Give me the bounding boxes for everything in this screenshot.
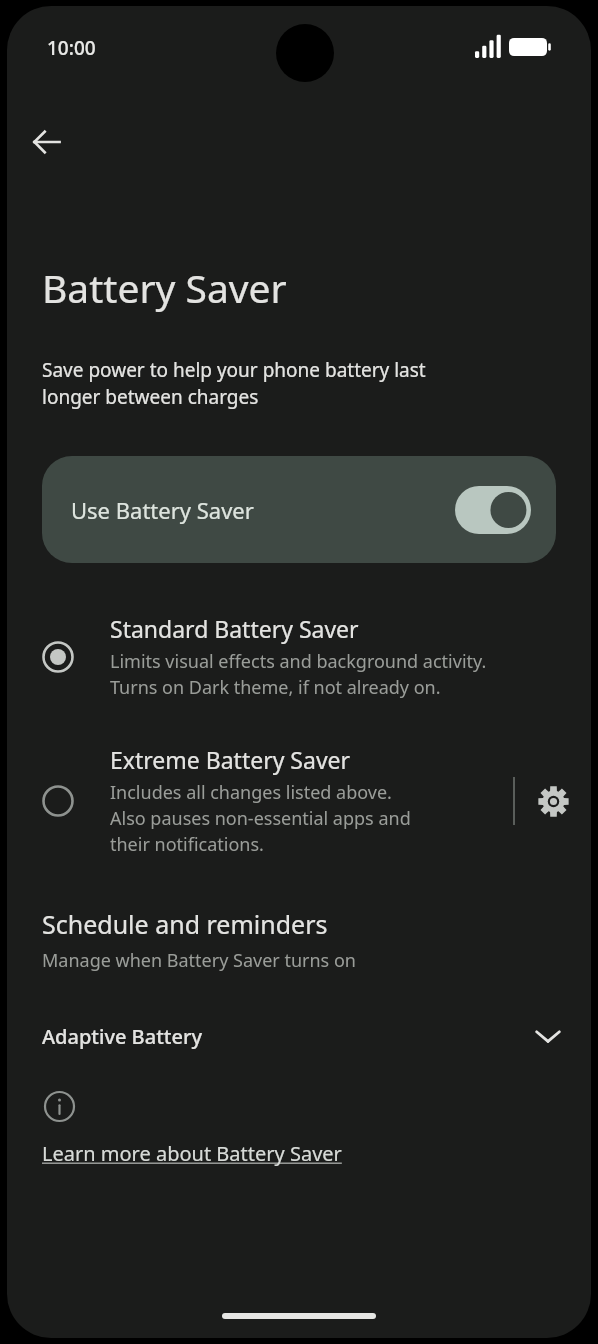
staticText: Schedule and reminders <box>42 907 328 941</box>
button[interactable]: Extreme Battery Saver <box>7 740 513 861</box>
staticText: Use Battery Saver <box>71 495 254 525</box>
button[interactable]: Learn more about Battery Saver <box>42 1138 342 1169</box>
staticText: Save power to help your phone battery la… <box>42 357 426 410</box>
staticText: Battery Saver <box>42 261 287 314</box>
button[interactable]: Standard Battery Saver <box>7 609 591 704</box>
button[interactable]: Schedule and reminders <box>7 905 591 975</box>
staticText: Includes all changes listed above. Also … <box>110 780 411 857</box>
staticText: Learn more about Battery Saver <box>42 1140 342 1167</box>
staticText: Extreme Battery Saver <box>110 744 351 775</box>
staticText: Limits visual effects and background act… <box>110 649 487 700</box>
button[interactable]: Extreme Battery Saver settings <box>515 763 591 839</box>
button[interactable]: Adaptive Battery <box>7 1015 591 1057</box>
staticText: Manage when Battery Saver turns on <box>42 948 356 973</box>
button[interactable]: Back <box>21 116 73 168</box>
staticText: Standard Battery Saver <box>110 613 359 644</box>
button[interactable]: Use Battery Saver <box>42 456 556 563</box>
staticText: Adaptive Battery <box>42 1023 202 1050</box>
staticText: 10:00 <box>47 35 96 61</box>
